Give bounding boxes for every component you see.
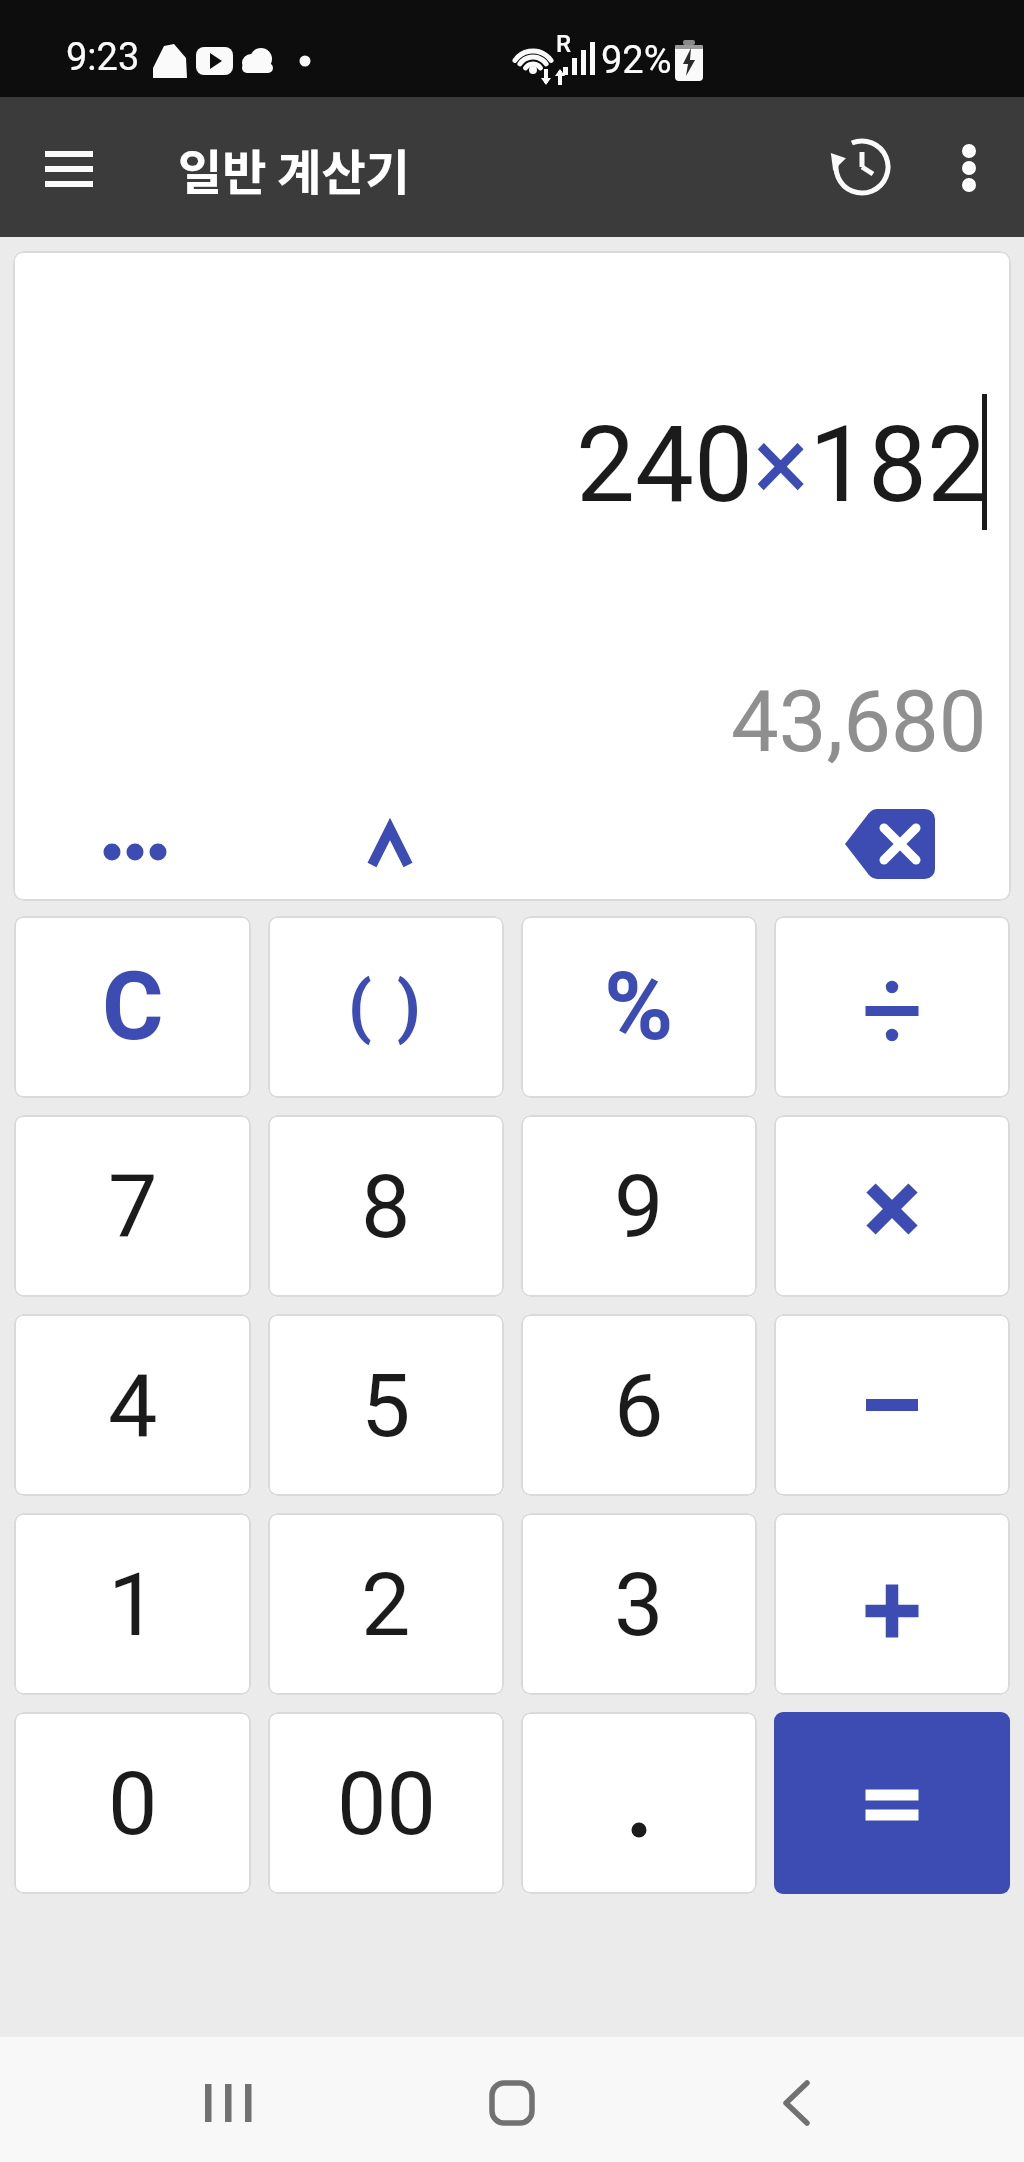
button[interactable]: 1 <box>14 1513 251 1695</box>
button[interactable] <box>774 1513 1010 1695</box>
staticText: 4 <box>108 1354 158 1457</box>
staticText: 0 <box>108 1752 158 1855</box>
button[interactable]: 3 <box>521 1513 757 1695</box>
button[interactable]: 7 <box>14 1115 251 1297</box>
button[interactable] <box>774 916 1010 1098</box>
button[interactable] <box>774 1115 1010 1297</box>
button[interactable] <box>88 817 188 887</box>
staticText: % <box>604 952 674 1062</box>
button[interactable] <box>935 117 1005 217</box>
button[interactable] <box>24 128 114 208</box>
button[interactable] <box>774 1712 1010 1894</box>
button[interactable]: C <box>14 916 251 1098</box>
button[interactable]: 2 <box>268 1513 504 1695</box>
button[interactable] <box>345 804 435 884</box>
button[interactable]: 00 <box>268 1712 504 1894</box>
staticText: 00 <box>337 1752 436 1855</box>
button[interactable]: 8 <box>268 1115 504 1297</box>
staticText: 7 <box>108 1155 158 1258</box>
button[interactable] <box>812 117 912 217</box>
button[interactable]: 5 <box>268 1314 504 1496</box>
staticText: 3 <box>614 1553 664 1656</box>
staticText: C <box>102 952 164 1062</box>
button[interactable] <box>830 796 950 891</box>
staticText: 5 <box>361 1354 411 1457</box>
staticText: R <box>556 30 571 58</box>
button[interactable]: ( ) <box>268 916 504 1098</box>
staticText: 43,680 <box>731 672 987 772</box>
staticText: 240×182 <box>576 404 987 527</box>
staticText: 92% <box>601 38 672 83</box>
staticText: 8 <box>361 1155 411 1258</box>
staticText: 9 <box>614 1155 664 1258</box>
staticText: 1 <box>108 1553 158 1656</box>
button[interactable] <box>736 2063 856 2143</box>
staticText: 6 <box>614 1354 664 1457</box>
button[interactable] <box>168 2063 288 2143</box>
button[interactable] <box>774 1314 1010 1496</box>
button[interactable]: 4 <box>14 1314 251 1496</box>
staticText: 2 <box>361 1553 411 1656</box>
button[interactable]: % <box>521 916 757 1098</box>
button[interactable]: 6 <box>521 1314 757 1496</box>
staticText: 일반 계산기 <box>178 134 410 204</box>
staticText: 9:23 <box>66 35 140 80</box>
staticText: ( ) <box>348 967 425 1047</box>
button[interactable] <box>452 2063 572 2143</box>
button[interactable]: 0 <box>14 1712 251 1894</box>
button[interactable]: 9 <box>521 1115 757 1297</box>
button[interactable] <box>521 1712 757 1894</box>
